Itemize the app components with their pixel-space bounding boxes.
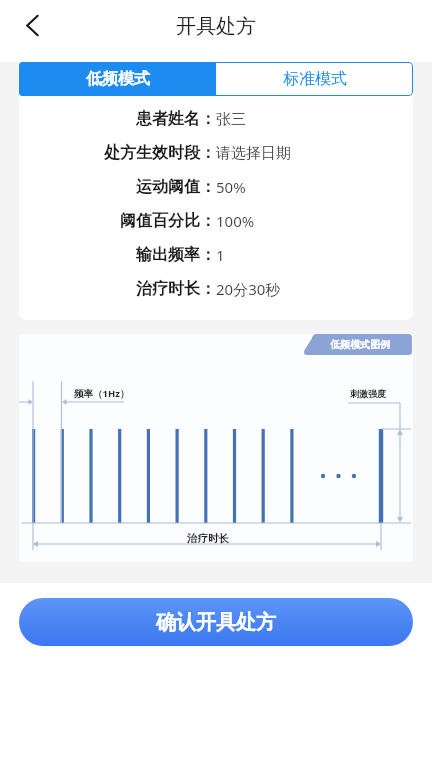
staticText: 输出频率： <box>136 245 216 265</box>
staticText: 20分30秒 <box>216 279 281 299</box>
button[interactable]: Back <box>13 6 52 45</box>
staticText: 1 <box>216 245 225 265</box>
staticText: 运动阈值： <box>136 177 216 197</box>
staticText: 治疗时长： <box>136 279 216 299</box>
staticText: 患者姓名： <box>136 109 216 129</box>
staticText: 低频模式图例 <box>330 338 390 351</box>
staticText: 刺激强度 <box>350 388 386 399</box>
button[interactable]: 低频模式 <box>19 62 216 96</box>
staticText: 张三 <box>216 110 246 129</box>
staticText: 100% <box>216 211 255 231</box>
button[interactable]: 标准模式 <box>216 62 413 96</box>
staticText: 治疗时长 <box>187 532 229 545</box>
staticText: 请选择日期 <box>216 144 291 163</box>
staticText: 频率（1Hz） <box>74 387 130 400</box>
staticText: 阈值百分比： <box>120 211 216 231</box>
staticText: 标准模式 <box>283 69 347 89</box>
staticText: 处方生效时段： <box>104 143 216 163</box>
staticText: 开具处方 <box>176 14 256 39</box>
staticText: 50% <box>216 177 246 197</box>
button[interactable]: 确认开具处方 <box>19 598 413 646</box>
staticText: 低频模式 <box>86 69 150 89</box>
staticText: 确认开具处方 <box>156 610 276 635</box>
